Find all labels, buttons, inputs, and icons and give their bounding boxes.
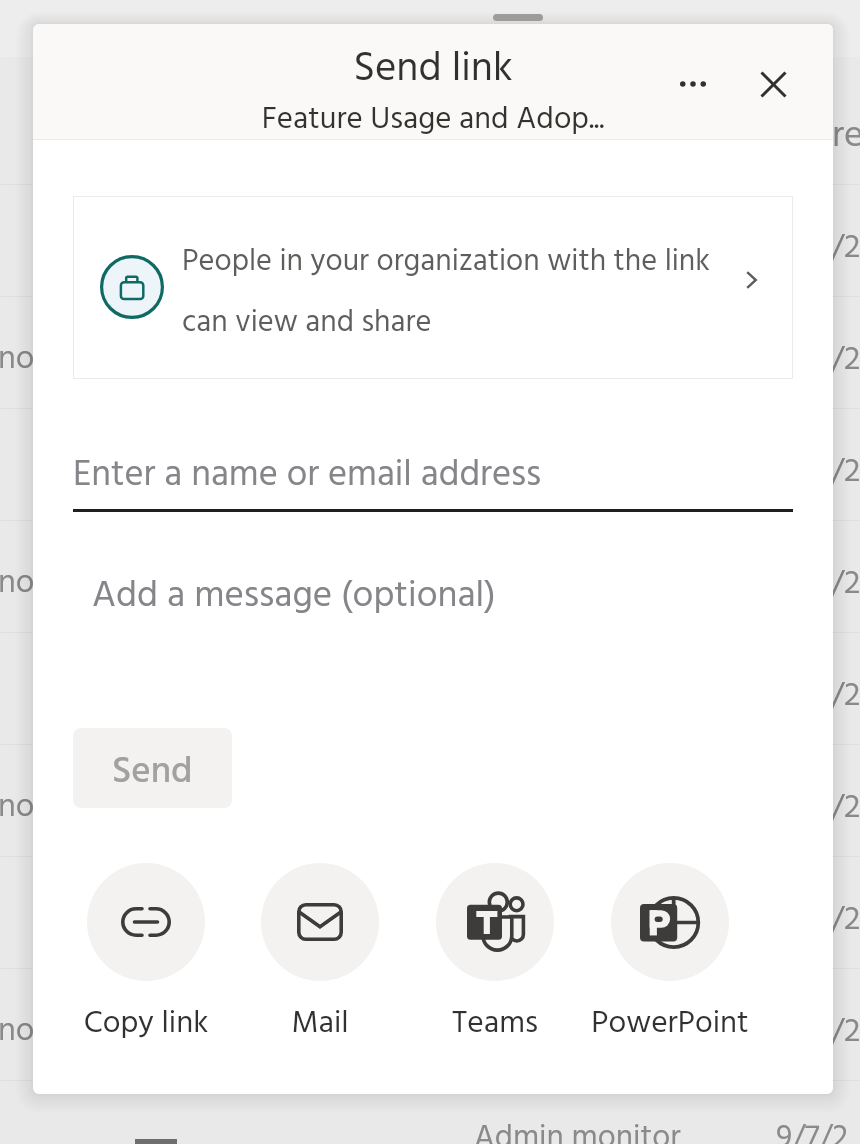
staticText: PowerPoint — [583, 999, 757, 1049]
staticText: 9/7/2023 — [786, 782, 860, 835]
staticText: res — [832, 107, 860, 166]
staticText: Mail — [233, 999, 407, 1049]
staticText: 9/7/2023 — [786, 1006, 860, 1059]
staticText: 9/7/2023 — [786, 670, 860, 723]
staticText: Enter a name or email address — [73, 446, 542, 504]
staticText: 9/7/2023 — [786, 558, 860, 611]
staticText: Send — [112, 743, 193, 802]
button[interactable]: Close — [743, 54, 803, 114]
staticText: Copy link — [59, 999, 233, 1049]
button[interactable]: Mail — [233, 863, 407, 1049]
staticText: no — [0, 781, 35, 834]
button[interactable]: More options — [663, 54, 723, 114]
button[interactable]: People in your organization with the lin… — [73, 196, 793, 379]
staticText: 9/7/2 — [776, 1113, 849, 1144]
staticText: 9/7/2023 — [786, 222, 860, 275]
button[interactable]: PowerPoint — [583, 863, 757, 1049]
staticText: Add a message (optional) — [92, 567, 496, 626]
staticText: Admin monitor — [474, 1113, 681, 1144]
staticText: 9/7/2023 — [786, 894, 860, 947]
button[interactable]: Copy link — [59, 863, 233, 1049]
staticText: 9/7/2023 — [786, 446, 860, 499]
staticText: Send link — [33, 37, 833, 103]
button[interactable]: Teams — [408, 863, 582, 1049]
staticText: no — [0, 1005, 35, 1058]
staticText: no — [0, 333, 35, 386]
staticText: People in your organization with the lin… — [182, 238, 727, 347]
staticText: Feature Usage and Adop... — [33, 95, 833, 145]
staticText: Teams — [408, 999, 582, 1049]
staticText: no — [0, 557, 35, 610]
staticText: 9/7/2023 — [786, 334, 860, 387]
button[interactable]: Send — [73, 728, 232, 808]
